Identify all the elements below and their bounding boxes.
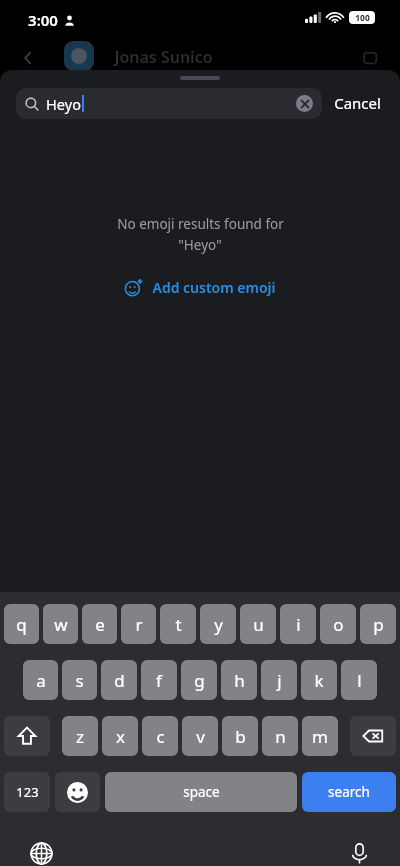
button[interactable]: r <box>121 604 156 644</box>
staticText: z <box>76 725 84 748</box>
button[interactable]: w <box>43 604 78 644</box>
staticText: q <box>16 613 27 636</box>
button[interactable]: c <box>142 716 178 756</box>
staticText: space <box>183 783 220 801</box>
button[interactable]: p <box>360 604 396 644</box>
button[interactable]: Voice input <box>342 836 376 866</box>
button[interactable]: d <box>101 660 137 700</box>
staticText: y <box>214 613 223 636</box>
staticText: j <box>277 669 282 692</box>
button[interactable]: search <box>302 772 396 812</box>
staticText: r <box>135 613 143 636</box>
staticText: v <box>196 725 205 748</box>
staticText: Cancel <box>334 93 381 113</box>
button[interactable]: Reply <box>354 42 384 72</box>
staticText: f <box>156 669 162 692</box>
button[interactable]: Backspace <box>350 716 396 756</box>
button[interactable]: t <box>160 604 196 644</box>
staticText: l <box>357 669 362 692</box>
button[interactable]: g <box>181 660 217 700</box>
staticText: n <box>275 725 286 748</box>
button[interactable]: n <box>262 716 298 756</box>
staticText: Add custom emoji <box>152 278 276 297</box>
staticText: e <box>95 613 105 636</box>
button[interactable]: u <box>240 604 276 644</box>
staticText: t <box>175 613 182 636</box>
staticText: o <box>333 613 344 636</box>
button[interactable]: o <box>320 604 356 644</box>
button[interactable]: f <box>141 660 177 700</box>
button[interactable]: x <box>102 716 138 756</box>
staticText: g <box>194 669 205 692</box>
button[interactable]: Change keyboard language <box>24 836 58 866</box>
button[interactable]: Clear text <box>296 95 313 112</box>
button[interactable]: z <box>62 716 98 756</box>
button[interactable]: m <box>302 716 338 756</box>
button[interactable]: space <box>105 772 297 812</box>
button[interactable]: Back <box>14 44 42 72</box>
button[interactable]: h <box>221 660 257 700</box>
button[interactable]: Heyo <box>16 88 322 119</box>
button[interactable]: 123 <box>4 772 50 812</box>
staticText: 123 <box>16 783 39 801</box>
button[interactable]: b <box>222 716 258 756</box>
staticText: Jonas Sunico <box>114 46 213 68</box>
button[interactable]: Add custom emoji <box>118 274 282 301</box>
staticText: 3:00 <box>28 10 58 30</box>
button[interactable]: Cancel <box>332 89 383 117</box>
staticText: p <box>373 613 384 636</box>
staticText: i <box>296 613 301 636</box>
button[interactable]: v <box>182 716 218 756</box>
button[interactable]: a <box>23 660 58 700</box>
staticText: 100 <box>355 12 370 24</box>
staticText: k <box>314 669 324 692</box>
button[interactable]: j <box>261 660 297 700</box>
staticText: w <box>54 613 68 636</box>
staticText: d <box>114 669 125 692</box>
button[interactable]: k <box>301 660 337 700</box>
staticText: a <box>36 669 46 692</box>
button[interactable]: y <box>200 604 236 644</box>
button[interactable]: e <box>82 604 117 644</box>
staticText: s <box>75 669 84 692</box>
staticText: No emoji results found for <box>117 215 284 233</box>
staticText: b <box>235 725 246 748</box>
button[interactable]: i <box>280 604 316 644</box>
button[interactable]: Shift <box>4 716 50 756</box>
staticText: x <box>116 725 125 748</box>
staticText: "Heyo" <box>178 236 222 254</box>
button[interactable]: q <box>4 604 39 644</box>
staticText: h <box>234 669 245 692</box>
staticText: c <box>156 725 165 748</box>
button[interactable]: l <box>341 660 377 700</box>
staticText: Heyo <box>46 94 81 114</box>
staticText: m <box>312 725 328 748</box>
button[interactable]: s <box>62 660 97 700</box>
button[interactable]: Emoji <box>55 772 100 812</box>
staticText: u <box>253 613 264 636</box>
staticText: search <box>328 783 370 801</box>
